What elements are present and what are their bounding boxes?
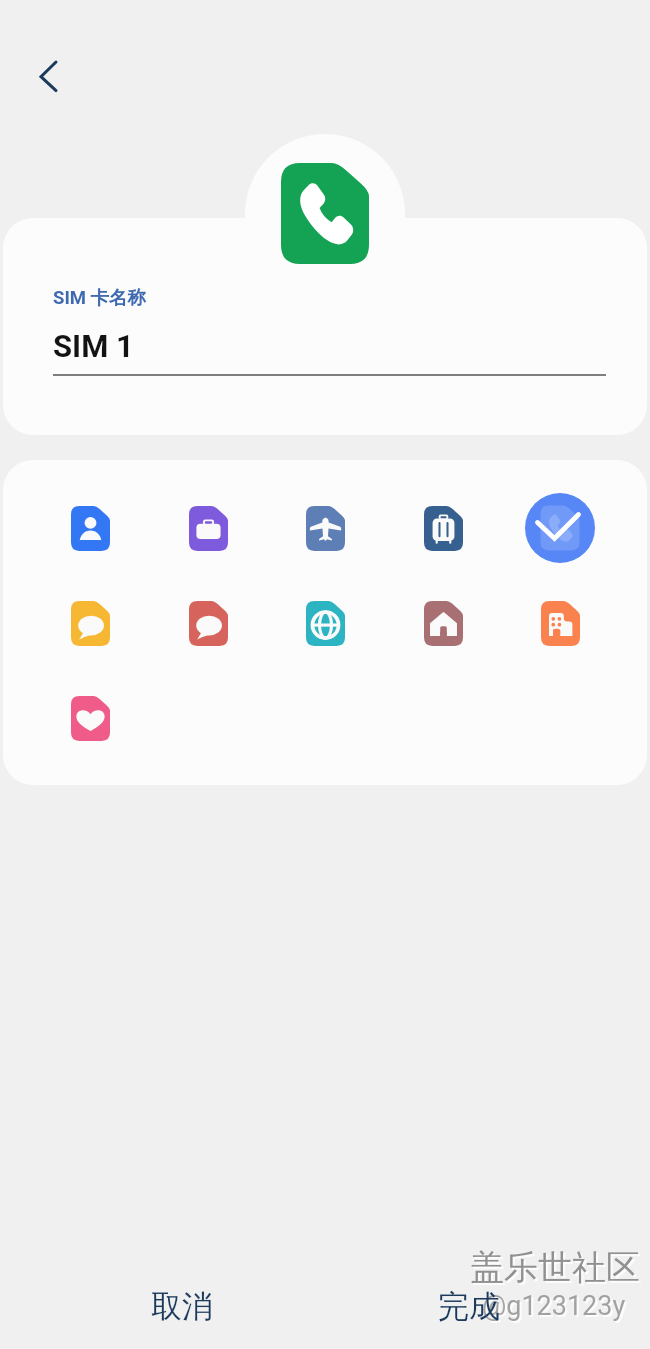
button[interactable]: Message (60, 593, 120, 653)
staticText: @g123123y (484, 1292, 628, 1324)
staticText: 完成 (438, 1287, 500, 1326)
button[interactable]: Internet (295, 593, 355, 653)
button[interactable]: Back (20, 41, 80, 101)
button[interactable]: Contact (60, 498, 120, 558)
button[interactable]: Home (413, 593, 473, 653)
button[interactable]: Trip (413, 498, 473, 558)
staticText: SIM 1 (53, 328, 134, 364)
button[interactable]: Favourite (60, 688, 120, 748)
button[interactable]: Work (178, 498, 238, 558)
button[interactable]: Travel (295, 498, 355, 558)
button[interactable]: Selected icon, phone (525, 493, 595, 563)
staticText: 取消 (151, 1287, 213, 1326)
staticText: @g123123y (482, 1290, 626, 1322)
staticText: 盖乐世社区 (472, 1248, 642, 1291)
staticText: 盖乐世社区 (470, 1246, 640, 1289)
button[interactable]: 完成 (325, 1261, 612, 1349)
button[interactable]: Office (530, 593, 590, 653)
button[interactable]: Message (178, 593, 238, 653)
button[interactable]: 取消 (38, 1261, 325, 1349)
staticText: SIM 卡名称 (53, 286, 147, 309)
